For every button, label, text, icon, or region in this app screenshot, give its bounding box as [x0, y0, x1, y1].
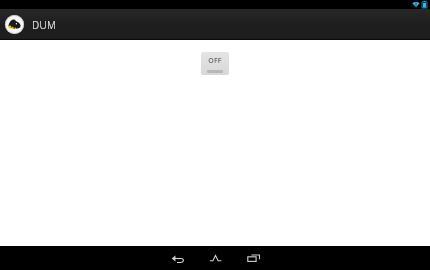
button[interactable]: OFF: [201, 52, 229, 75]
staticText: OFF: [201, 56, 229, 66]
staticText: DUM: [32, 18, 56, 32]
button[interactable]: Back: [159, 247, 195, 269]
button[interactable]: App icon: [3, 13, 26, 36]
button[interactable]: Home: [197, 247, 233, 269]
button[interactable]: Recent apps: [235, 247, 271, 269]
